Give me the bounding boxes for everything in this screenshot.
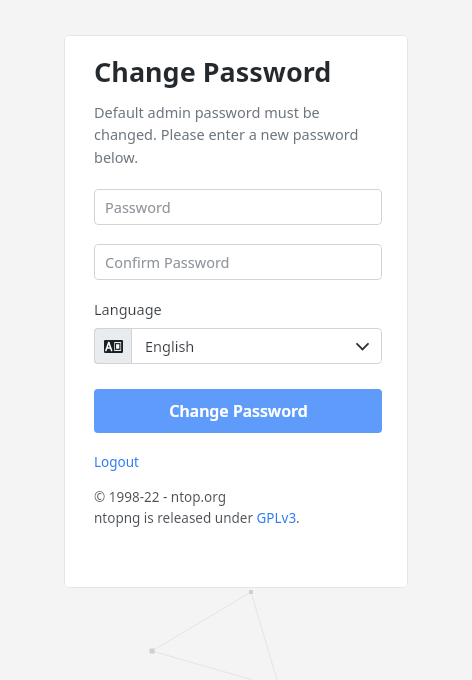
button[interactable]: ntopng is released under GPLv3.: [94, 509, 300, 527]
button[interactable]: Password: [94, 189, 382, 225]
button[interactable]: English: [94, 328, 382, 364]
staticText: Language: [94, 299, 162, 319]
staticText: Confirm Password: [105, 252, 230, 272]
staticText: Change Password: [169, 400, 308, 422]
staticText: Change Password: [94, 53, 332, 90]
staticText: English: [145, 336, 195, 356]
staticText: © 1998-22 - ntop.org: [94, 488, 227, 506]
button[interactable]: Change Password: [94, 389, 382, 433]
button[interactable]: Confirm Password: [94, 244, 382, 280]
staticText: ntopng is released under GPLv3.: [94, 509, 300, 527]
staticText: Logout: [94, 453, 139, 471]
staticText: Default admin password must be changed. …: [94, 102, 382, 167]
staticText: Password: [105, 197, 171, 217]
button[interactable]: Logout: [94, 453, 139, 471]
